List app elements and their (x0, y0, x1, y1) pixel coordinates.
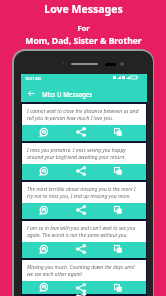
staticText: For (77, 23, 90, 33)
staticText: I am so in love with you and can't wait … (27, 225, 141, 238)
staticText: Love Messages (44, 2, 123, 16)
button[interactable]: Share (74, 164, 88, 178)
button[interactable]: Copy (111, 242, 125, 256)
staticText: 10:57 AM (25, 76, 41, 81)
button[interactable]: Share (74, 281, 88, 294)
button[interactable]: Copy (111, 203, 125, 217)
button[interactable]: The most terrible about missing you is t… (22, 182, 146, 219)
button[interactable]: WhatsApp (36, 164, 50, 178)
staticText: I miss you presence. I miss seeing you h… (27, 147, 141, 160)
button[interactable]: I am so in love with you and can't wait … (22, 221, 146, 258)
button[interactable]: Share (74, 125, 88, 139)
button[interactable]: Copy (111, 164, 125, 178)
staticText: The most terrible about missing you is t… (27, 186, 141, 199)
button[interactable]: WhatsApp (36, 125, 50, 139)
button[interactable]: WhatsApp (36, 242, 50, 256)
button[interactable]: I miss you presence. I miss seeing you h… (22, 143, 146, 180)
button[interactable]: WhatsApp (36, 281, 50, 294)
button[interactable]: Back (24, 86, 38, 100)
staticText: I cannot wait to close the distance betw… (27, 108, 141, 121)
button[interactable]: Missing you much. Counting down the days… (22, 260, 146, 294)
button[interactable]: WhatsApp (36, 203, 50, 217)
staticText: Missing you much. Counting down the days… (27, 264, 141, 277)
staticText: Miss U Messages (42, 90, 93, 98)
button[interactable]: Share (74, 242, 88, 256)
button[interactable]: I cannot wait to close the distance betw… (22, 104, 146, 141)
staticText: Mom, Dad, Sister & Brother (25, 35, 142, 47)
button[interactable]: Copy (111, 125, 125, 139)
button[interactable]: Copy (111, 281, 125, 294)
button[interactable]: Share (74, 203, 88, 217)
